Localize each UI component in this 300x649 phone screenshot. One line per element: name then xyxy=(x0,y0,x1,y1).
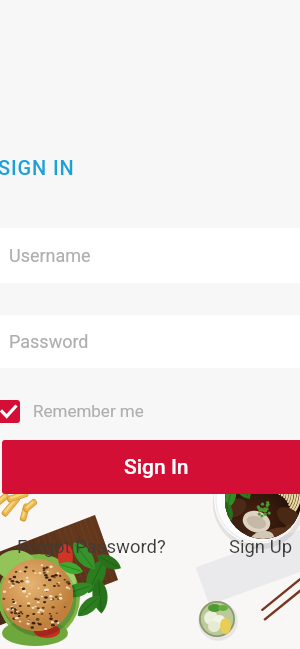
button[interactable]: Sign Up xyxy=(229,536,293,558)
button[interactable]: Username xyxy=(0,228,300,283)
staticText: Username xyxy=(9,245,91,266)
staticText: Sign In xyxy=(124,455,189,480)
button[interactable]: Forgot Password? xyxy=(17,536,166,558)
staticText: Password xyxy=(9,331,89,352)
staticText: SIGN IN xyxy=(0,156,75,179)
button[interactable]: Remember me xyxy=(0,399,144,423)
button[interactable]: Sign In xyxy=(2,440,300,494)
button[interactable]: Password xyxy=(0,315,300,368)
staticText: Remember me xyxy=(33,401,144,421)
